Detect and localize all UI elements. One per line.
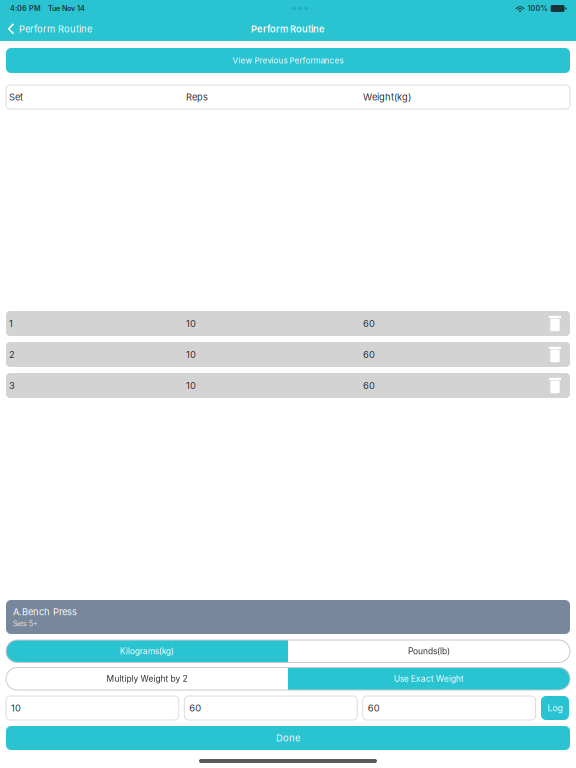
staticText: Weight(kg) [363,91,411,103]
staticText: 1 [9,318,13,329]
staticText: 2 [9,349,15,360]
staticText: Multiply Weight by 2 [106,674,187,684]
staticText: Use Exact Weight [394,674,464,684]
button[interactable]: Perform Routine [0,17,102,41]
button[interactable]: Done [6,726,570,750]
staticText: Reps [186,91,208,103]
button[interactable]: Pounds(lb) [288,640,570,662]
staticText: Pounds(lb) [408,646,450,656]
button[interactable]: Multiply Weight by 2 [6,667,288,690]
staticText: Tue Nov 14 [48,4,85,13]
staticText: Log [547,703,562,713]
staticText: 10 [11,702,21,714]
button[interactable]: Delete set 3 [549,378,561,393]
button[interactable]: Delete set 2 [549,347,561,362]
staticText: Kilograms(kg) [120,646,174,656]
staticText: Perform Routine [251,23,325,35]
staticText: 10 [186,349,196,360]
staticText: 4:06 PM [10,4,41,13]
button[interactable]: Delete set 1 [549,316,561,331]
staticText: View Previous Performances [232,56,343,65]
staticText: Sets 5+ [13,619,38,628]
staticText: 60 [363,349,375,360]
staticText: 60 [363,318,375,329]
staticText: 60 [368,702,380,714]
staticText: 60 [363,380,375,391]
staticText: 60 [189,702,201,714]
staticText: 100% [528,4,548,13]
staticText: 10 [186,318,196,329]
button[interactable]: Use Exact Weight [288,667,570,690]
button[interactable]: View Previous Performances [6,48,570,73]
staticText: Perform Routine [19,23,92,35]
staticText: A.Bench Press [13,606,77,617]
staticText: 3 [9,380,15,391]
button[interactable]: Log [541,696,569,720]
button[interactable]: Kilograms(kg) [6,640,288,662]
staticText: Set [9,91,23,103]
staticText: Done [276,732,300,744]
staticText: 10 [186,380,196,391]
